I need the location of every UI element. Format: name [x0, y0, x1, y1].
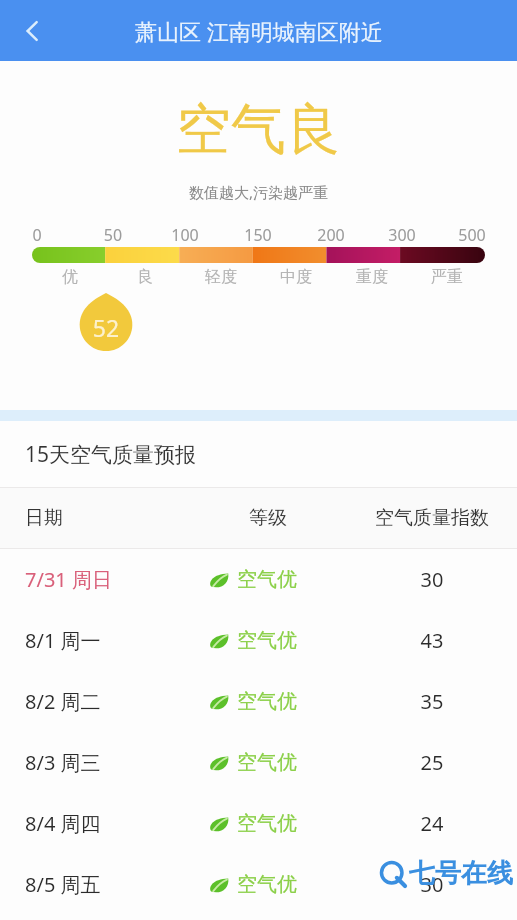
staticText: 等级 [238, 506, 298, 530]
button[interactable]: 8/3 周三 [0, 732, 517, 793]
staticText: 严重 [415, 267, 479, 287]
staticText: 空气质量指数 [357, 506, 507, 530]
staticText: 良 [113, 267, 177, 287]
staticText: 空气优 [237, 689, 297, 714]
staticText: 30 [357, 871, 507, 898]
staticText: 100 [161, 224, 209, 244]
staticText: 空气优 [237, 567, 297, 592]
staticText: 43 [357, 627, 507, 654]
staticText: 150 [234, 224, 282, 244]
staticText: 500 [448, 224, 496, 244]
staticText: 50 [89, 224, 137, 244]
staticText: 数值越大,污染越严重 [0, 182, 517, 202]
button[interactable]: Back [8, 7, 56, 55]
button[interactable]: 8/2 周二 [0, 671, 517, 732]
staticText: 萧山区 江南明城南区附近 [135, 16, 383, 46]
button[interactable]: 8/5 周五 [0, 854, 517, 915]
staticText: 七号在线 [409, 857, 513, 890]
staticText: 优 [38, 267, 102, 287]
staticText: 轻度 [189, 267, 253, 287]
staticText: 200 [307, 224, 355, 244]
staticText: 52 [78, 312, 134, 343]
staticText: 日期 [25, 506, 63, 530]
staticText: 空气良 [0, 95, 517, 164]
button[interactable]: 8/4 周四 [0, 793, 517, 854]
staticText: 24 [357, 810, 507, 837]
staticText: 8/1 周一 [25, 627, 101, 654]
staticText: 30 [357, 566, 507, 593]
staticText: 空气优 [237, 811, 297, 836]
button[interactable]: 7/31 周日 [0, 549, 517, 610]
staticText: 25 [357, 749, 507, 776]
staticText: 空气优 [237, 628, 297, 653]
button[interactable]: 8/1 周一 [0, 610, 517, 671]
staticText: 300 [378, 224, 426, 244]
staticText: 8/3 周三 [25, 749, 101, 776]
staticText: 7/31 周日 [25, 566, 112, 593]
staticText: 8/5 周五 [25, 871, 101, 898]
staticText: 15天空气质量预报 [25, 440, 197, 469]
staticText: 8/2 周二 [25, 688, 101, 715]
staticText: 空气优 [237, 872, 297, 897]
staticText: 8/4 周四 [25, 810, 101, 837]
staticText: 35 [357, 688, 507, 715]
staticText: 重度 [340, 267, 404, 287]
staticText: 中度 [264, 267, 328, 287]
staticText: 0 [13, 224, 61, 244]
staticText: 空气优 [237, 750, 297, 775]
